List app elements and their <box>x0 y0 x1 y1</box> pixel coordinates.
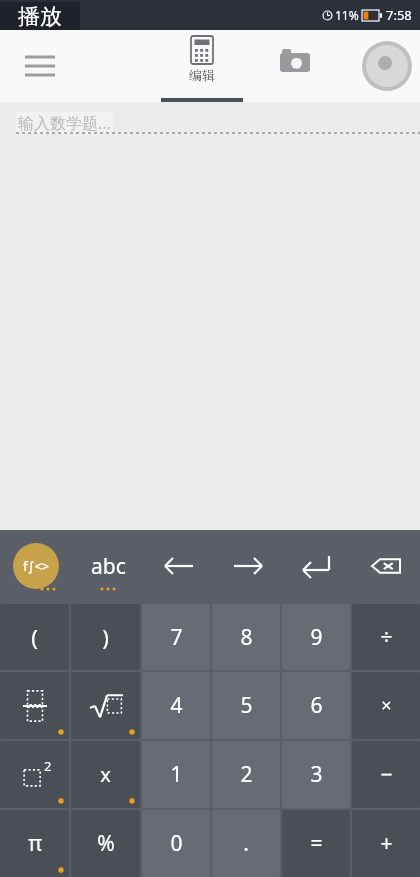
button[interactable]: ( <box>0 604 69 670</box>
staticText: 2 <box>44 757 52 775</box>
button[interactable]: π <box>0 810 69 877</box>
button[interactable]: Profile <box>360 39 414 93</box>
staticText: 6 <box>310 691 323 720</box>
staticText: 0 <box>170 829 183 858</box>
staticText: abc <box>91 552 126 581</box>
staticText: 1 <box>170 760 183 789</box>
button[interactable]: abc <box>72 530 144 602</box>
staticText: 7:58 <box>386 6 412 24</box>
staticText: 2 <box>240 760 253 789</box>
staticText: 8 <box>240 623 253 652</box>
button[interactable]: Square <box>0 741 69 808</box>
staticText: % <box>97 829 115 858</box>
staticText: . <box>243 829 249 858</box>
button[interactable]: Enter <box>282 530 351 602</box>
staticText: 9 <box>310 623 323 652</box>
staticText: 4 <box>170 691 183 720</box>
button[interactable]: Camera <box>270 35 320 85</box>
button[interactable]: 6 <box>282 672 350 739</box>
button[interactable]: Cursor right <box>213 530 282 602</box>
staticText: π <box>28 829 42 858</box>
button[interactable]: 1 <box>142 741 210 808</box>
staticText: 输入数学题... <box>18 112 111 134</box>
staticText: 编辑 <box>189 67 215 83</box>
button[interactable]: 编辑 <box>161 30 243 102</box>
button[interactable]: 8 <box>212 604 280 670</box>
staticText: 3 <box>310 760 323 789</box>
staticText: x <box>100 761 111 788</box>
button[interactable]: 4 <box>142 672 210 739</box>
button[interactable]: Square root <box>71 672 140 739</box>
button[interactable]: + <box>352 810 420 877</box>
button[interactable]: x <box>71 741 140 808</box>
button[interactable]: Menu <box>14 40 66 92</box>
button[interactable]: 0 <box>142 810 210 877</box>
button[interactable]: 5 <box>212 672 280 739</box>
staticText: ( <box>31 622 38 652</box>
staticText: − <box>380 760 393 789</box>
button[interactable]: . <box>212 810 280 877</box>
staticText: + <box>380 829 393 858</box>
staticText: × <box>381 693 392 718</box>
button[interactable]: Cursor left <box>144 530 213 602</box>
staticText: 11% <box>335 7 359 23</box>
button[interactable]: = <box>282 810 350 877</box>
staticText: ) <box>102 622 109 652</box>
button[interactable]: 2 <box>212 741 280 808</box>
staticText: f∫<> <box>23 557 50 575</box>
button[interactable]: 9 <box>282 604 350 670</box>
button[interactable]: × <box>352 672 420 739</box>
staticText: 5 <box>240 691 253 720</box>
staticText: ÷ <box>380 623 393 652</box>
button[interactable]: % <box>71 810 140 877</box>
button[interactable]: 7 <box>142 604 210 670</box>
button[interactable]: 输入数学题... <box>16 112 420 134</box>
button[interactable]: ÷ <box>352 604 420 670</box>
staticText: = <box>310 829 323 858</box>
button[interactable]: − <box>352 741 420 808</box>
staticText: 播放 <box>18 3 62 31</box>
button[interactable]: Fraction <box>0 672 69 739</box>
button[interactable]: ) <box>71 604 140 670</box>
button[interactable]: Backspace <box>351 530 420 602</box>
button[interactable]: 3 <box>282 741 350 808</box>
button[interactable]: f∫<> <box>0 530 72 602</box>
staticText: 7 <box>170 623 183 652</box>
